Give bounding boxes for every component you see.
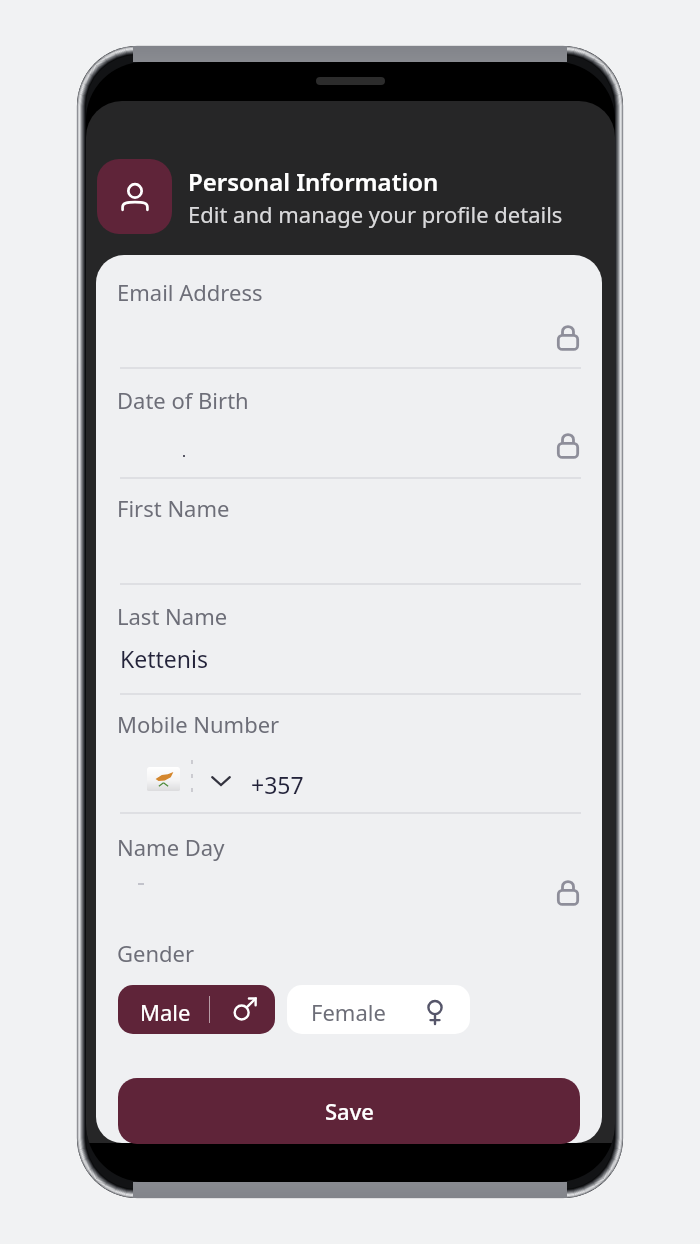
button[interactable]: Save xyxy=(118,1078,580,1144)
button[interactable]: Select country code xyxy=(208,768,234,794)
other: Locked field xyxy=(555,878,581,908)
staticText: Email Address xyxy=(117,277,263,307)
button[interactable]: Male xyxy=(118,985,275,1034)
staticText: Kettenis xyxy=(120,643,208,674)
button[interactable]: Profile photo xyxy=(97,159,172,234)
button[interactable]: Female xyxy=(287,985,470,1034)
staticText: Mobile Number xyxy=(117,709,280,739)
staticText: Save xyxy=(325,1096,374,1126)
staticText: Personal Information xyxy=(188,165,439,198)
other: Locked field xyxy=(555,431,581,461)
staticText: Gender xyxy=(117,938,195,968)
other: Locked field xyxy=(555,323,581,353)
button[interactable]: Country flag Cyprus xyxy=(147,767,180,791)
staticText: Date of Birth xyxy=(117,385,249,415)
staticText: Male xyxy=(140,997,191,1027)
staticText: Edit and manage your profile details xyxy=(188,199,563,229)
staticText: Name Day xyxy=(117,832,225,862)
staticText: First Name xyxy=(117,493,230,523)
staticText: Female xyxy=(311,997,386,1027)
staticText: Last Name xyxy=(117,601,228,631)
staticText: +357 xyxy=(251,769,304,800)
